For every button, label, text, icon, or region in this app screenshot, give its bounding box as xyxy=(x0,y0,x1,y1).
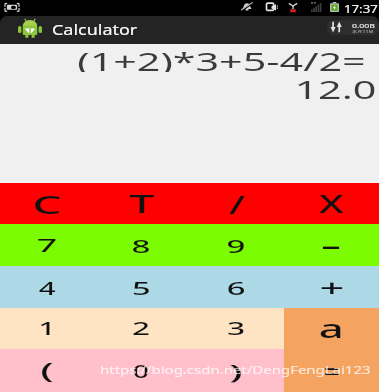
staticText: + xyxy=(319,271,345,304)
staticText: 0.00B xyxy=(352,22,376,29)
staticText: / xyxy=(229,186,245,221)
button[interactable]: 9 xyxy=(189,224,284,266)
button[interactable]: 2 xyxy=(94,308,189,349)
button[interactable]: 5 xyxy=(94,266,189,308)
staticText: ( xyxy=(40,356,55,385)
button[interactable]: C xyxy=(0,183,94,224)
staticText: T xyxy=(129,187,155,221)
staticText: 3 xyxy=(227,316,246,341)
button[interactable]: ( xyxy=(0,349,94,392)
button[interactable]: + xyxy=(284,266,379,308)
staticText: X xyxy=(319,187,345,221)
staticText: = xyxy=(324,354,340,387)
staticText: 12.0 xyxy=(294,72,377,102)
staticText: 17:37 xyxy=(344,2,378,16)
button[interactable]: 4 xyxy=(0,266,94,308)
staticText: 本月11M xyxy=(352,29,374,34)
staticText: 9 xyxy=(227,233,246,258)
button[interactable]: T xyxy=(94,183,189,224)
staticText: 1 xyxy=(38,316,57,341)
button[interactable]: Data usage xyxy=(327,20,379,35)
staticText: 4 xyxy=(39,275,56,300)
button[interactable]: a xyxy=(284,308,379,349)
staticText: ) xyxy=(229,357,244,385)
button[interactable]: 3 xyxy=(189,308,284,349)
button[interactable]: 6 xyxy=(189,266,284,308)
button[interactable]: ) xyxy=(189,349,284,392)
staticText: https://blog.csdn.net/DengFengLai123 xyxy=(100,362,371,377)
staticText: 5 xyxy=(132,275,151,300)
button[interactable] xyxy=(0,16,379,44)
button[interactable]: 7 xyxy=(0,224,94,266)
button[interactable]: 8 xyxy=(94,224,189,266)
staticText: a xyxy=(319,311,344,346)
staticText: 2 xyxy=(132,316,151,341)
staticText: (1+2)*3+5-4/2= xyxy=(77,44,366,72)
staticText: 6 xyxy=(227,275,246,300)
staticText: C xyxy=(32,186,63,221)
button[interactable]: 0 xyxy=(94,349,189,392)
button[interactable]: 1 xyxy=(0,308,94,349)
button[interactable]: X xyxy=(284,183,379,224)
staticText: 7 xyxy=(37,233,58,258)
button[interactable]: = xyxy=(284,349,379,392)
staticText: - xyxy=(320,227,342,263)
staticText: 8 xyxy=(131,233,151,258)
staticText: Calculator xyxy=(52,21,138,39)
staticText: 0 xyxy=(133,359,150,383)
button[interactable]: / xyxy=(189,183,284,224)
button[interactable]: - xyxy=(284,224,379,266)
